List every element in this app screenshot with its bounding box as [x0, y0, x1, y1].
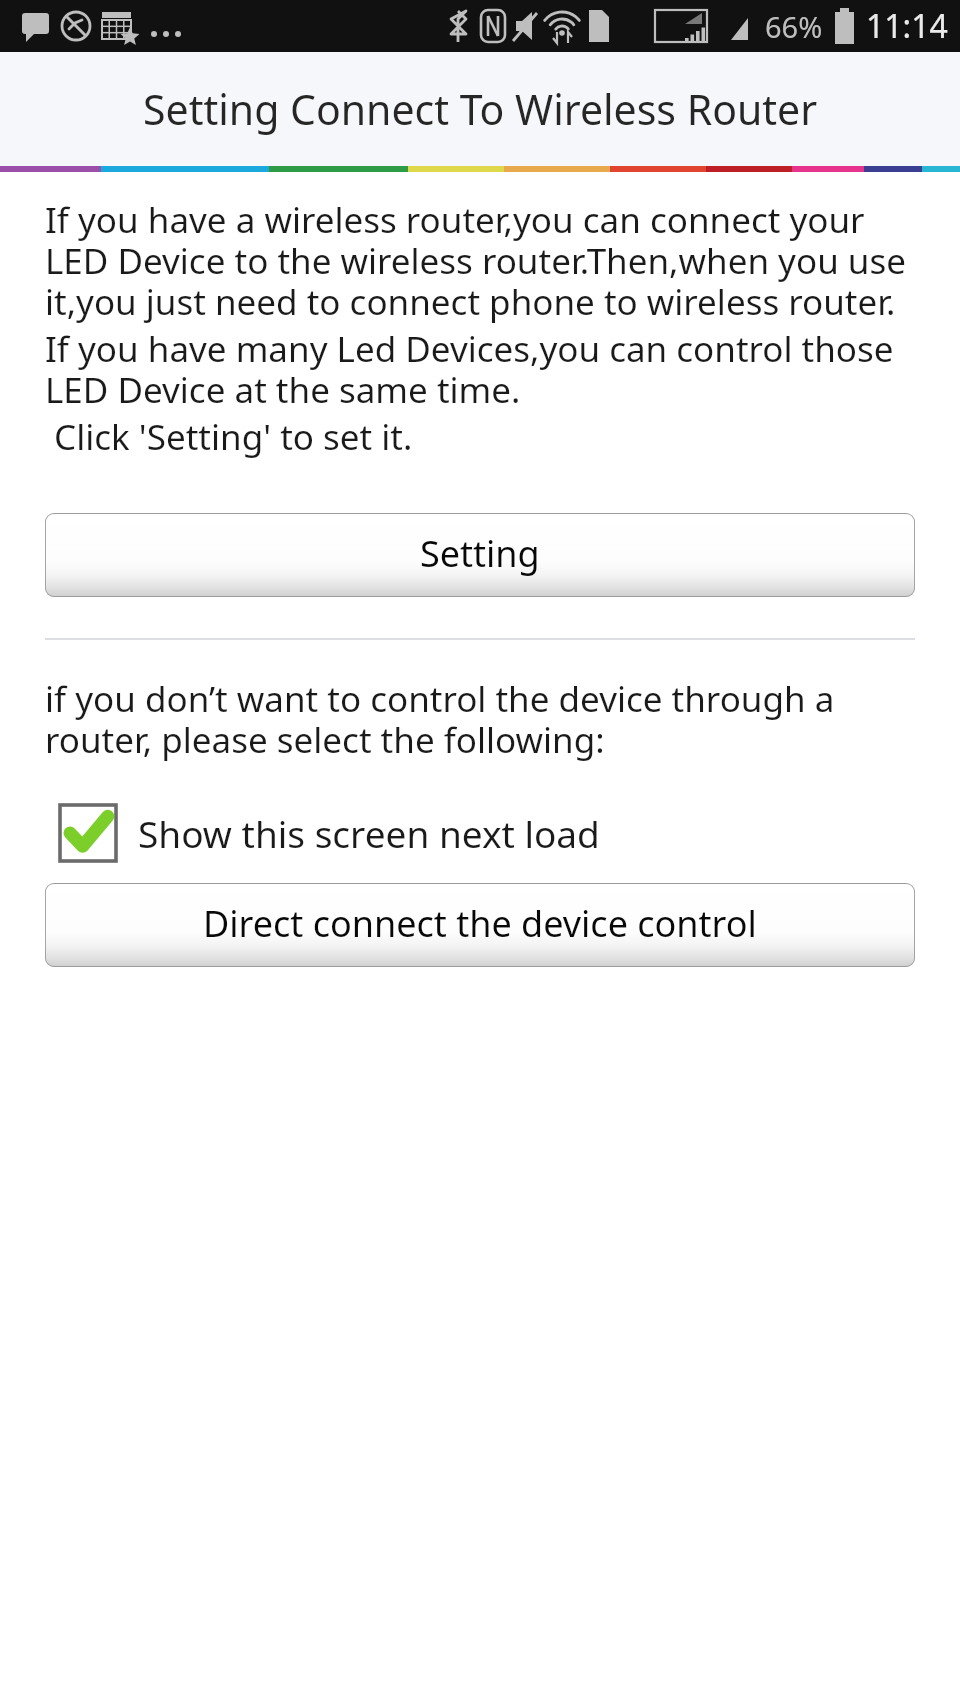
- staticText: 11:14: [866, 4, 948, 48]
- staticText: 66%: [765, 7, 823, 46]
- button[interactable]: Direct connect the device control: [45, 883, 915, 967]
- staticText: Direct connect the device control: [203, 899, 757, 948]
- button[interactable]: Setting: [45, 513, 915, 597]
- staticText: If you have a wireless router,you can co…: [45, 196, 915, 325]
- staticText: Show this screen next load: [138, 808, 600, 858]
- staticText: Setting Connect To Wireless Router: [143, 81, 818, 137]
- staticText: Setting: [420, 529, 540, 578]
- other: Show this screen next load checkbox: [58, 803, 118, 863]
- button[interactable]: Show this screen next load checkbox: [45, 803, 915, 863]
- staticText: if you don’t want to control the device …: [45, 675, 915, 763]
- staticText: If you have many Led Devices,you can con…: [45, 325, 915, 413]
- staticText: Click 'Setting' to set it.: [45, 413, 413, 461]
